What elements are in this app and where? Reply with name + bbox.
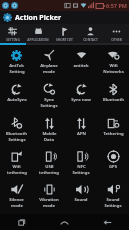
button[interactable]: USB <box>33 148 65 181</box>
button[interactable]: Home <box>43 214 86 230</box>
staticText: Settings <box>40 103 58 109</box>
button[interactable]: CONTACT <box>77 24 103 43</box>
button[interactable]: NFC <box>65 148 97 181</box>
staticText: NFC <box>77 164 86 170</box>
staticText: CONTACT <box>83 38 98 42</box>
button[interactable]: Sound <box>97 181 129 214</box>
staticText: Sync now <box>71 97 91 103</box>
staticText: Data <box>44 137 54 143</box>
staticText: Airplane <box>40 63 58 69</box>
button[interactable]: SHORTCUT <box>51 24 77 43</box>
staticText: Setting <box>9 69 25 75</box>
staticText: mode <box>11 203 23 209</box>
staticText: OTHER <box>111 38 122 42</box>
staticText: tethering <box>39 170 59 176</box>
staticText: Tethering <box>103 131 124 137</box>
button[interactable]: GPS <box>97 148 129 181</box>
button[interactable]: Vibration <box>33 181 65 214</box>
staticText: Action Picker <box>15 13 62 23</box>
staticText: antitek <box>73 63 89 69</box>
button[interactable]: Mobile <box>33 115 65 148</box>
button[interactable]: Recents <box>0 214 43 230</box>
button[interactable]: AutoSync <box>0 81 33 115</box>
button[interactable]: Wifi <box>97 47 129 81</box>
button[interactable]: Bluetooth <box>0 115 33 148</box>
staticText: AutoSync <box>7 97 27 103</box>
staticText: USB <box>45 164 54 170</box>
staticText: Bluetooth <box>103 97 124 103</box>
staticText: Sound <box>74 197 88 203</box>
button[interactable]: Bluetooth <box>97 81 129 115</box>
button[interactable]: AntTek <box>0 47 33 81</box>
staticText: Sync <box>44 97 54 103</box>
staticText: APPLICATION <box>27 38 49 42</box>
button[interactable]: Sync <box>33 81 65 115</box>
staticText: SHORTCUT <box>56 38 73 42</box>
button[interactable]: Tethering <box>97 115 129 148</box>
staticText: GPS <box>109 164 117 170</box>
staticText: tethering <box>7 170 27 176</box>
staticText: mode <box>43 203 55 209</box>
button[interactable]: Back <box>86 214 129 230</box>
staticText: 6:57 PM <box>106 2 128 9</box>
button[interactable]: Airplane <box>33 47 65 81</box>
staticText: Vibration <box>39 197 59 203</box>
button[interactable]: SETTING <box>0 24 25 43</box>
button[interactable]: APN <box>65 115 97 148</box>
staticText: Settings <box>104 203 122 209</box>
staticText: APN <box>77 131 86 137</box>
button[interactable]: Wifi <box>0 148 33 181</box>
staticText: Bluetooth <box>6 131 27 137</box>
staticText: Wifi <box>12 164 21 170</box>
staticText: Mobile <box>42 131 57 137</box>
staticText: SETTING <box>6 38 20 42</box>
button[interactable]: OTHER <box>103 24 129 43</box>
staticText: Settings <box>8 137 26 143</box>
button[interactable]: Sound <box>65 181 97 214</box>
staticText: Silence <box>9 197 24 203</box>
staticText: AntTek <box>9 63 24 69</box>
staticText: Networks <box>103 69 124 75</box>
staticText: Sound <box>106 197 120 203</box>
button[interactable]: APPLICATION <box>25 24 51 43</box>
staticText: Settings <box>72 170 90 176</box>
staticText: mode <box>43 69 55 75</box>
button[interactable]: Sync now <box>65 81 97 115</box>
staticText: Wifi <box>109 63 118 69</box>
button[interactable]: antitek <box>65 47 97 81</box>
button[interactable]: Silence <box>0 181 33 214</box>
